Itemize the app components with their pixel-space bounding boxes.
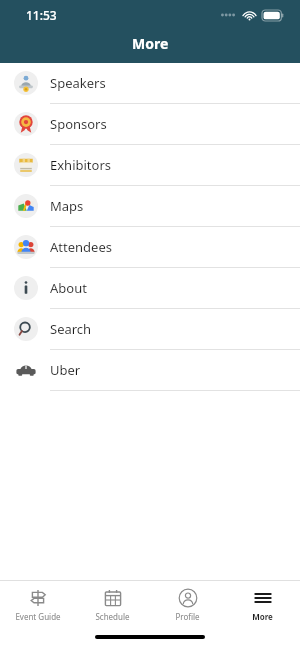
- staticText: More: [252, 611, 273, 622]
- button[interactable]: About: [0, 268, 300, 308]
- staticText: Sponsors: [50, 115, 107, 133]
- other: Profile: [178, 588, 198, 608]
- button[interactable]: Search: [0, 309, 300, 349]
- button[interactable]: Attendees: [0, 227, 300, 267]
- button[interactable]: Sponsors: [0, 104, 300, 144]
- button[interactable]: Maps: [0, 186, 300, 226]
- staticText: About: [50, 279, 87, 297]
- button[interactable]: Event Guide: [0, 581, 75, 629]
- staticText: More: [132, 34, 169, 53]
- other: Schedule: [103, 588, 123, 608]
- other: More: [253, 588, 273, 608]
- other: Event Guide: [28, 588, 48, 608]
- button[interactable]: More: [225, 581, 300, 629]
- staticText: Schedule: [95, 611, 130, 622]
- button[interactable]: Profile: [150, 581, 225, 629]
- staticText: 11:53: [26, 7, 57, 23]
- staticText: Speakers: [50, 74, 106, 92]
- staticText: Event Guide: [15, 611, 61, 622]
- button[interactable]: Uber: [0, 350, 300, 390]
- staticText: Uber: [50, 361, 81, 379]
- button[interactable]: Schedule: [75, 581, 150, 629]
- button[interactable]: Exhibitors: [0, 145, 300, 185]
- staticText: Profile: [175, 611, 200, 622]
- staticText: Maps: [50, 197, 84, 215]
- staticText: Attendees: [50, 238, 112, 256]
- staticText: Search: [50, 320, 92, 338]
- button[interactable]: Speakers: [0, 63, 300, 103]
- staticText: Exhibitors: [50, 156, 111, 174]
